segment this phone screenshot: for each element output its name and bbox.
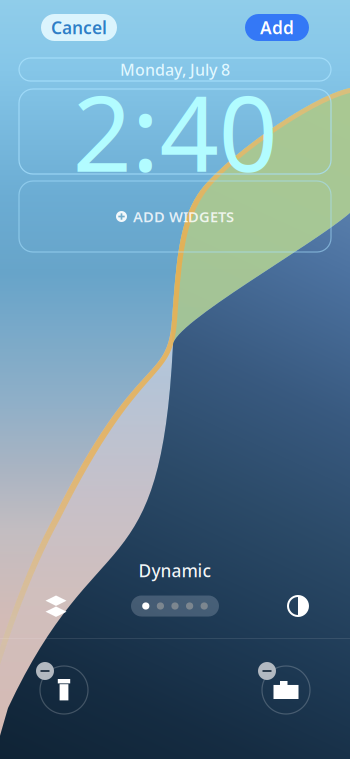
- button[interactable]: Flashlight: [36, 662, 92, 718]
- button[interactable]: ADD WIDGETS: [0, 181, 350, 252]
- button[interactable]: Cancel: [41, 14, 117, 41]
- staticText: Monday, July 8: [120, 59, 230, 80]
- staticText: Cancel: [51, 16, 107, 39]
- button[interactable]: Wallpaper page: [131, 595, 219, 616]
- staticText: ADD WIDGETS: [133, 207, 234, 226]
- button[interactable]: Add: [245, 14, 309, 41]
- button[interactable]: Colour filter: [287, 595, 309, 617]
- button[interactable]: 2:40: [0, 89, 350, 174]
- staticText: Dynamic: [138, 559, 211, 582]
- button[interactable]: Camera: [258, 662, 314, 718]
- staticText: 2:40: [72, 62, 277, 201]
- button[interactable]: Monday, July 8: [0, 58, 350, 81]
- button[interactable]: Photo shuffle: [41, 593, 71, 619]
- staticText: Add: [260, 16, 294, 39]
